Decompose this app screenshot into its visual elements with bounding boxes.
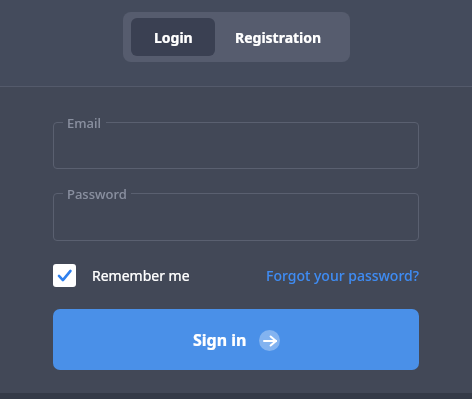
staticText: Forgot your password?: [266, 266, 419, 285]
button[interactable]: Forgot your password?: [266, 266, 419, 285]
staticText: Sign in: [193, 329, 247, 351]
staticText: Registration: [235, 28, 322, 47]
staticText: Login: [154, 28, 193, 47]
staticText: Email: [67, 114, 102, 132]
staticText: Password: [67, 185, 127, 203]
button[interactable]: Login: [131, 18, 215, 56]
button[interactable]: Registration: [215, 18, 342, 56]
staticText: Remember me: [92, 266, 190, 285]
button[interactable]: [53, 264, 76, 287]
button[interactable]: Sign in: [53, 309, 419, 370]
